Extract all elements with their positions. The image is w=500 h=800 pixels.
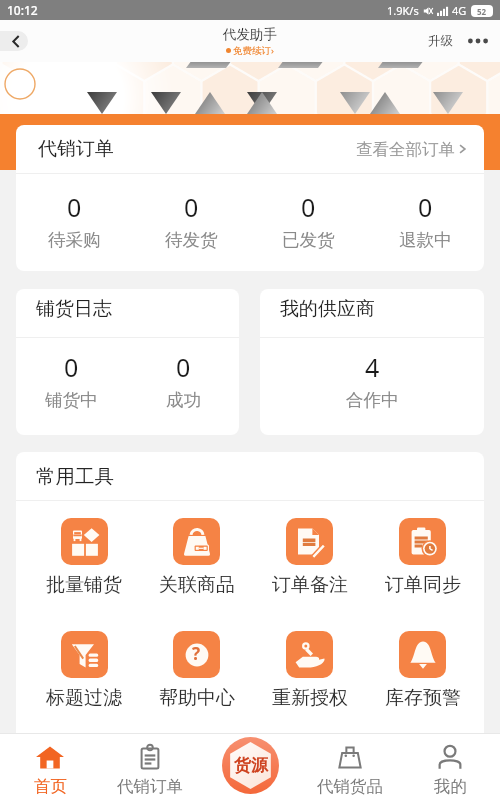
staticText: 首页 — [34, 776, 67, 797]
button[interactable]: 重新授权 — [253, 631, 366, 710]
staticText: 常用工具 — [36, 464, 114, 489]
staticText: 我的 — [434, 776, 467, 797]
staticText: 0 — [64, 350, 79, 384]
staticText: 10:12 — [7, 2, 38, 18]
staticText: 代销订单 — [117, 776, 183, 797]
staticText: 关联商品 — [159, 573, 235, 597]
button[interactable]: 代销订单 — [16, 125, 484, 173]
button[interactable]: 我的 — [400, 733, 500, 800]
staticText: 代销货品 — [317, 776, 383, 797]
staticText: 铺货日志 — [36, 297, 112, 321]
staticText: 成功 — [166, 389, 201, 411]
staticText: 免费续订› — [233, 44, 274, 57]
staticText: 升级 — [428, 33, 453, 49]
button[interactable]: 4 — [260, 350, 484, 411]
staticText: 铺货中 — [45, 389, 98, 411]
button[interactable]: 货源 — [222, 737, 279, 794]
staticText: 帮助中心 — [159, 686, 235, 710]
staticText: 1.9K/s — [387, 3, 419, 18]
button[interactable]: More options — [466, 29, 490, 53]
staticText: 重新授权 — [272, 686, 348, 710]
staticText: 52 — [477, 6, 487, 17]
button[interactable]: 0 — [16, 350, 127, 411]
button[interactable]: 代销订单 — [100, 733, 200, 800]
staticText: 0 — [176, 350, 191, 384]
button[interactable]: 升级 — [425, 28, 456, 54]
button[interactable]: 0 — [250, 190, 367, 251]
staticText: 0 — [418, 190, 433, 224]
staticText: 合作中 — [346, 389, 399, 411]
staticText: 批量铺货 — [46, 573, 122, 597]
staticText: 代销订单 — [38, 137, 114, 161]
button[interactable]: 标题过滤 — [28, 631, 140, 710]
button[interactable]: 订单备注 — [253, 518, 366, 597]
staticText: 已发货 — [282, 229, 335, 251]
button[interactable]: 0 — [127, 350, 239, 411]
button[interactable]: 0 — [133, 190, 250, 251]
button[interactable]: 关联商品 — [140, 518, 253, 597]
staticText: ? — [192, 642, 201, 665]
staticText: 代发助手 — [223, 26, 277, 43]
staticText: 待采购 — [48, 229, 101, 251]
staticText: 我的供应商 — [280, 297, 375, 321]
button[interactable]: 批量铺货 — [28, 518, 140, 597]
button[interactable]: ? — [140, 631, 253, 710]
staticText: 订单同步 — [385, 573, 461, 597]
staticText: 0 — [67, 190, 82, 224]
staticText: 订单备注 — [272, 573, 348, 597]
button[interactable]: 0 — [367, 190, 484, 251]
staticText: 货源 — [234, 755, 268, 776]
button[interactable]: Back — [0, 31, 28, 51]
staticText: 0 — [184, 190, 199, 224]
staticText: 查看全部订单 — [356, 139, 455, 160]
staticText: 0 — [301, 190, 316, 224]
button[interactable]: 订单同步 — [366, 518, 479, 597]
button[interactable]: 0 — [16, 190, 133, 251]
staticText: 待发货 — [165, 229, 218, 251]
staticText: 4G — [452, 3, 467, 18]
staticText: 4 — [365, 350, 380, 384]
button[interactable]: 库存预警 — [366, 631, 479, 710]
staticText: 退款中 — [399, 229, 452, 251]
button[interactable]: 代销货品 — [300, 733, 400, 800]
button[interactable]: 首页 — [0, 733, 100, 800]
staticText: 标题过滤 — [46, 686, 122, 710]
staticText: 库存预警 — [385, 686, 461, 710]
